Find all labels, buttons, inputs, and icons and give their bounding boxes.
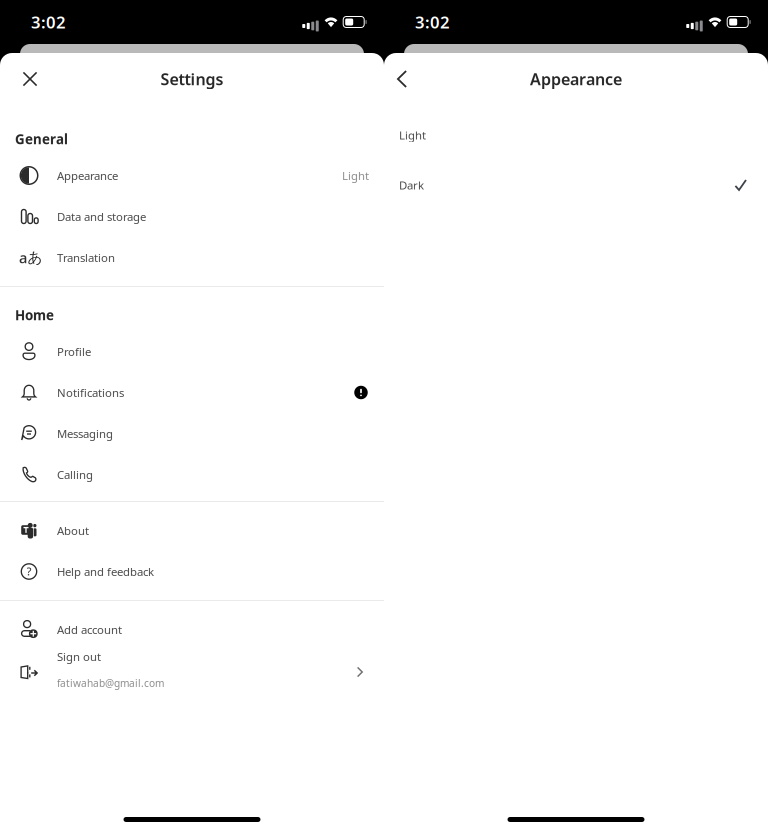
button[interactable]: About [0, 510, 384, 551]
staticText: ? [26, 563, 31, 579]
button[interactable]: Calling [0, 454, 384, 495]
staticText: General [15, 130, 68, 148]
staticText: Home [15, 306, 54, 324]
staticText: Data and storage [57, 209, 146, 224]
staticText: あ [27, 248, 42, 267]
button[interactable]: a [0, 237, 384, 278]
staticText: Translation [57, 250, 115, 265]
staticText: 3:02 [31, 11, 66, 33]
staticText: 3:02 [415, 11, 450, 33]
staticText: Sign out [57, 649, 101, 664]
button[interactable]: Light [384, 110, 768, 160]
button[interactable]: Close [10, 59, 50, 99]
staticText: Light [342, 168, 369, 183]
button[interactable]: ? [0, 551, 384, 592]
button[interactable]: Dark [384, 160, 768, 210]
staticText: Light [399, 127, 426, 143]
button[interactable]: Appearance [0, 155, 384, 196]
button[interactable]: Back [384, 59, 420, 99]
staticText: Appearance [57, 168, 118, 183]
staticText: Notifications [57, 385, 124, 400]
staticText: Calling [57, 467, 93, 482]
button[interactable]: Messaging [0, 413, 384, 454]
staticText: Help and feedback [57, 564, 154, 579]
staticText: Messaging [57, 426, 113, 441]
staticText: About [57, 523, 89, 538]
staticText: Profile [57, 344, 91, 359]
button[interactable]: Sign out [0, 650, 384, 704]
staticText: a [19, 247, 27, 267]
button[interactable]: Add account [0, 609, 384, 650]
staticText: Dark [399, 177, 424, 193]
button[interactable]: Notifications [0, 372, 384, 413]
staticText: Add account [57, 622, 122, 637]
staticText: Appearance [530, 68, 622, 90]
staticText: fatiwahab@gmail.com [57, 676, 164, 690]
button[interactable]: Data and storage [0, 196, 384, 237]
staticText: Settings [160, 68, 223, 90]
button[interactable]: Profile [0, 331, 384, 372]
